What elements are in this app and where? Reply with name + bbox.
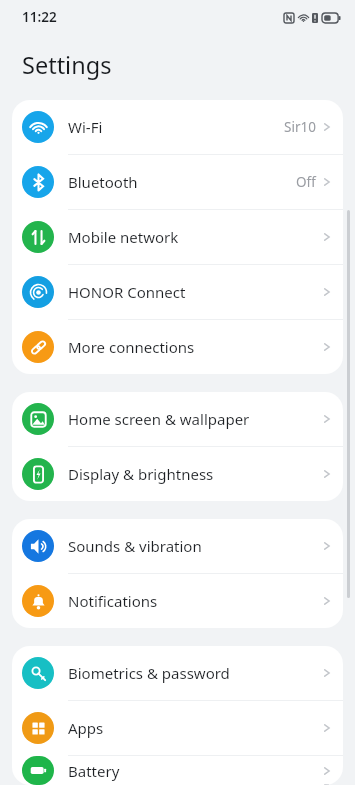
other: Battery (29, 761, 48, 780)
button[interactable]: Home screen & wallpaper (12, 392, 343, 446)
staticText: Wi-Fi (68, 117, 103, 137)
button[interactable]: Wi-Fi (12, 100, 343, 154)
staticText: Apps (68, 718, 104, 738)
other: Display & brightness (29, 465, 48, 484)
staticText: Notifications (68, 591, 158, 611)
other: Home screen & wallpaper (29, 410, 48, 429)
button[interactable]: Mobile network (12, 210, 343, 264)
staticText: Home screen & wallpaper (68, 409, 250, 429)
staticText: Biometrics & password (68, 663, 230, 683)
staticText: Mobile network (68, 227, 179, 247)
other: Mobile network (29, 228, 48, 247)
staticText: Settings (22, 49, 112, 81)
other: Sounds & vibration (29, 537, 48, 556)
other: Notifications (29, 592, 48, 611)
other: HONOR Connect (29, 283, 48, 302)
button[interactable]: Bluetooth (12, 155, 343, 209)
other: Apps (29, 719, 48, 738)
staticText: HONOR Connect (68, 282, 186, 302)
button[interactable]: Apps (12, 701, 343, 755)
other: More connections (29, 338, 48, 357)
button[interactable]: Sounds & vibration (12, 519, 343, 573)
button[interactable]: Display & brightness (12, 447, 343, 501)
staticText: Sir10 (284, 118, 316, 136)
other: Bluetooth (29, 173, 48, 192)
staticText: Display & brightness (68, 464, 214, 484)
staticText: 11:22 (22, 8, 57, 26)
staticText: More connections (68, 337, 195, 357)
staticText: Bluetooth (68, 172, 138, 192)
button[interactable]: Notifications (12, 574, 343, 628)
button[interactable]: Biometrics & password (12, 646, 343, 700)
other: Wi-Fi (29, 118, 48, 137)
other: Biometrics & password (29, 664, 48, 683)
button[interactable]: Battery (12, 756, 343, 785)
staticText: Sounds & vibration (68, 536, 202, 556)
staticText: Off (296, 173, 316, 191)
staticText: Battery (68, 761, 120, 781)
button[interactable]: HONOR Connect (12, 265, 343, 319)
button[interactable]: More connections (12, 320, 343, 374)
